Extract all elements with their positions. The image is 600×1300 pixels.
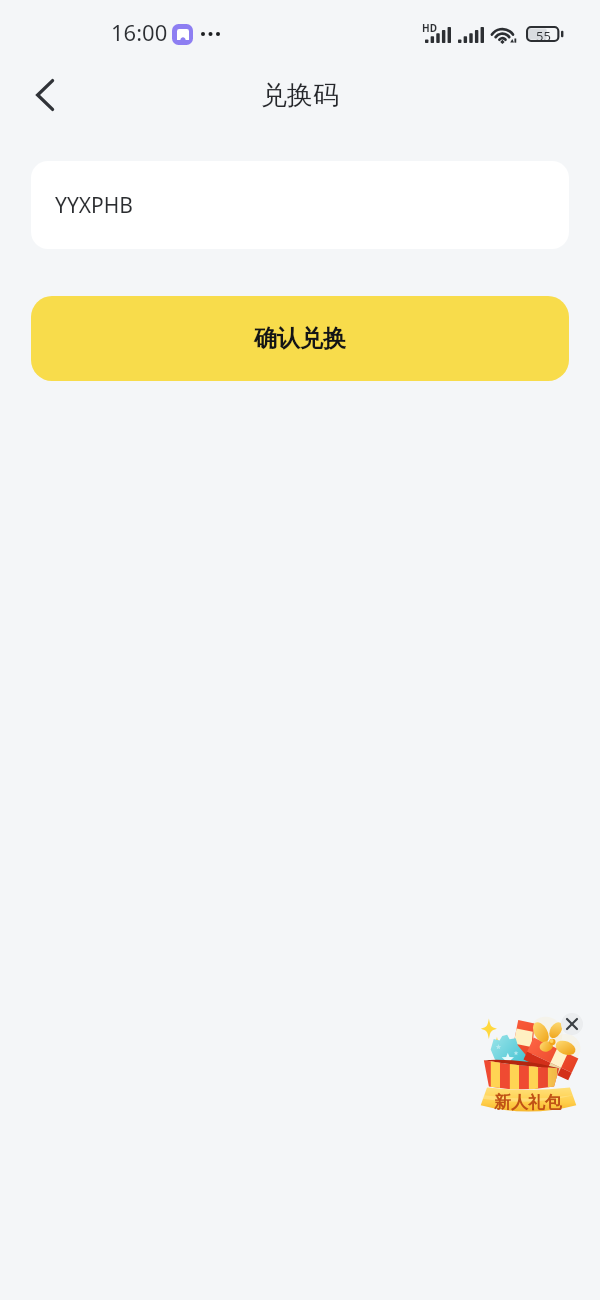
staticText: 确认兑换 [254, 324, 346, 353]
button[interactable]: Close [561, 1013, 583, 1035]
button[interactable]: 确认兑换 [31, 296, 569, 381]
staticText: 55 [536, 27, 551, 43]
button[interactable]: YYXPHB [31, 161, 569, 249]
staticText: 兑换码 [261, 79, 339, 112]
staticText: YYXPHB [55, 191, 133, 220]
button[interactable]: Back [17, 67, 73, 123]
staticText: 新人礼包 [494, 1092, 562, 1113]
staticText: 16:00 [111, 17, 168, 47]
button[interactable]: New user gift pack [474, 1010, 586, 1122]
staticText: HD [422, 21, 437, 35]
